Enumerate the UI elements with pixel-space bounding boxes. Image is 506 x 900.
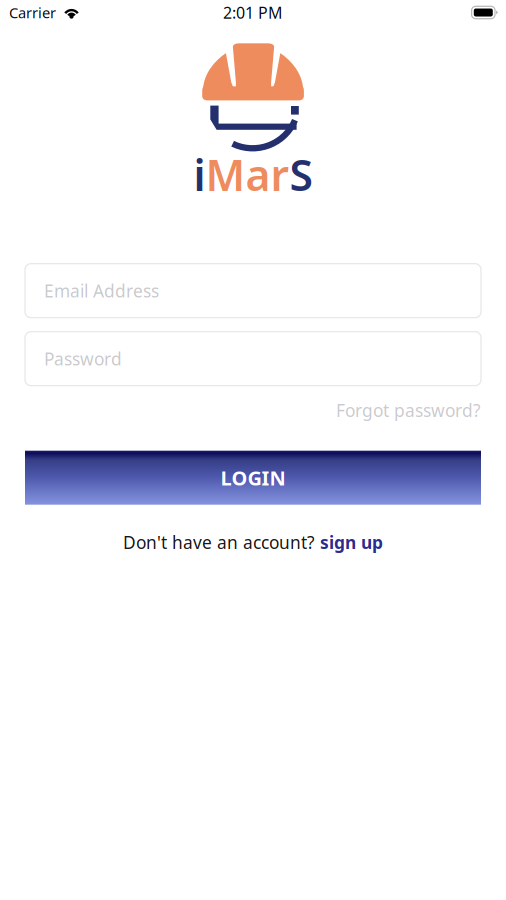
staticText: Don't have an account?: [123, 531, 320, 554]
staticText: 2:01 PM: [223, 2, 283, 23]
button[interactable]: LOGIN: [0, 451, 506, 505]
staticText: LOGIN: [220, 464, 285, 491]
staticText: Email Address: [44, 279, 159, 302]
staticText: S: [289, 146, 312, 203]
staticText: sign up: [320, 531, 383, 554]
staticText: Mar: [205, 146, 289, 203]
staticText: Password: [44, 347, 122, 370]
staticText: i: [193, 146, 205, 203]
button[interactable]: Don't have an account?: [123, 531, 383, 554]
button[interactable]: Forgot password?: [0, 386, 506, 451]
staticText: Forgot password?: [336, 399, 481, 422]
button[interactable]: Email Address: [25, 264, 481, 318]
staticText: Carrier: [9, 3, 56, 22]
button[interactable]: Password: [25, 332, 481, 386]
